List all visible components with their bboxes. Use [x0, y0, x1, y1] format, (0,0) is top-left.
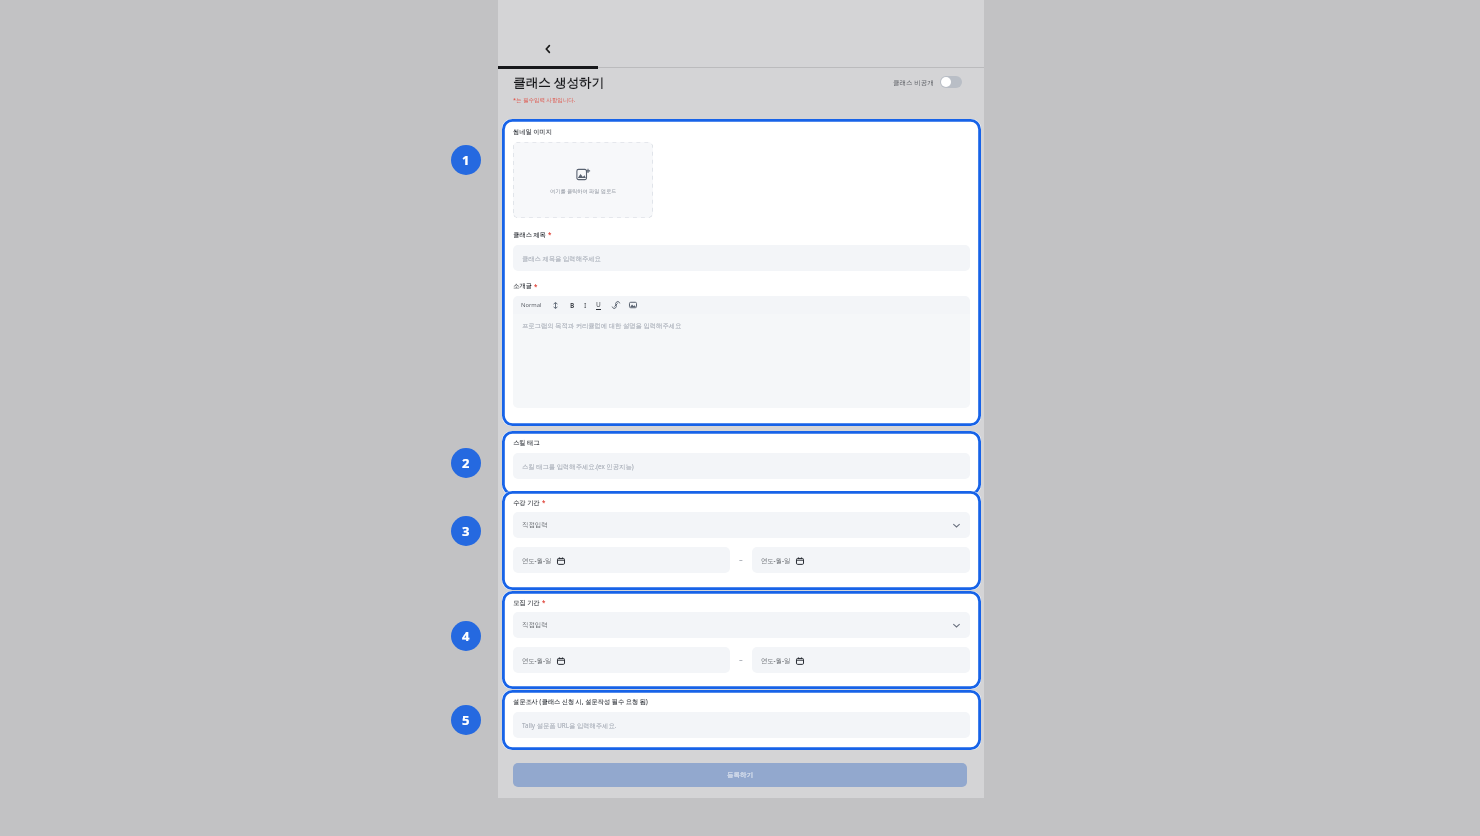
button[interactable]: 3 — [451, 516, 481, 546]
button[interactable]: 스킬 태그를 입력해주세요.(ex 인공지능) — [513, 453, 970, 479]
button[interactable]: 4 — [451, 621, 481, 651]
staticText: * — [542, 598, 546, 606]
button[interactable]: Pick date — [513, 547, 730, 573]
button[interactable]: 5 — [451, 705, 481, 735]
button[interactable]: 프로그램의 목적과 커리큘럼에 대한 설명을 입력해주세요 — [513, 314, 970, 408]
staticText: *는 필수입력 사항입니다. — [513, 96, 576, 104]
staticText: 연도-월-일 — [522, 656, 552, 665]
staticText: 2 — [462, 454, 470, 472]
button[interactable]: Insert image — [629, 301, 637, 309]
staticText: 연도-월-일 — [761, 556, 791, 565]
button[interactable]: Pick date — [513, 647, 730, 673]
staticText: * — [548, 230, 552, 238]
staticText: 모집 기간 — [513, 598, 540, 606]
staticText: * — [542, 498, 546, 506]
button[interactable]: Pick date — [752, 647, 970, 673]
staticText: 여기를 클릭하여 파일 업로드 — [550, 187, 617, 194]
staticText: 스킬 태그 — [513, 438, 540, 446]
staticText: 클래스 제목 — [513, 230, 546, 238]
staticText: 설문조사 (클래스 신청 시, 설문작성 필수 요청 됨) — [513, 697, 648, 705]
button[interactable]: 클래스 제목을 입력해주세요 — [513, 245, 970, 271]
staticText: 클래스 비공개 — [893, 78, 934, 87]
staticText: 등록하기 — [727, 771, 753, 779]
staticText: 썸네일 이미지 — [513, 127, 552, 135]
button[interactable]: 2 — [451, 448, 481, 478]
button[interactable]: 직접입력 — [513, 512, 970, 538]
button[interactable]: Pick date — [752, 547, 970, 573]
staticText: Tally 설문폼 URL을 입력해주세요. — [522, 721, 617, 730]
button[interactable]: Back — [498, 31, 598, 67]
button[interactable]: 등록하기 — [513, 763, 967, 787]
button[interactable] — [552, 302, 559, 309]
staticText: 프로그램의 목적과 커리큘럼에 대한 설명을 입력해주세요 — [522, 321, 682, 330]
staticText: 클래스 생성하기 — [513, 74, 604, 91]
staticText: 5 — [462, 711, 470, 729]
button[interactable]: B — [570, 301, 575, 310]
staticText: 수강 기간 — [513, 498, 540, 506]
staticText: 직접입력 — [522, 521, 548, 529]
button[interactable]: Upload image — [513, 142, 653, 218]
staticText: U — [596, 300, 601, 309]
button[interactable]: 직접입력 — [513, 612, 970, 638]
staticText: 3 — [462, 522, 470, 540]
staticText: ~ — [739, 556, 743, 565]
staticText: 4 — [462, 627, 470, 645]
button[interactable]: U — [596, 300, 601, 310]
staticText: 소개글 — [513, 282, 532, 290]
staticText: * — [534, 282, 538, 290]
button[interactable]: 1 — [451, 145, 481, 175]
staticText: 스킬 태그를 입력해주세요.(ex 인공지능) — [522, 462, 634, 471]
staticText: 연도-월-일 — [761, 656, 791, 665]
button[interactable]: Insert link — [612, 301, 620, 309]
staticText: 직접입력 — [522, 621, 548, 629]
staticText: 1 — [462, 151, 470, 169]
staticText: 클래스 제목을 입력해주세요 — [522, 254, 601, 263]
staticText: 연도-월-일 — [522, 556, 552, 565]
staticText: Normal — [521, 301, 542, 309]
staticText: ~ — [739, 656, 743, 665]
button[interactable]: 클래스 비공개 — [893, 72, 962, 92]
button[interactable]: I — [584, 301, 587, 310]
button[interactable]: Tally 설문폼 URL을 입력해주세요. — [513, 712, 970, 738]
